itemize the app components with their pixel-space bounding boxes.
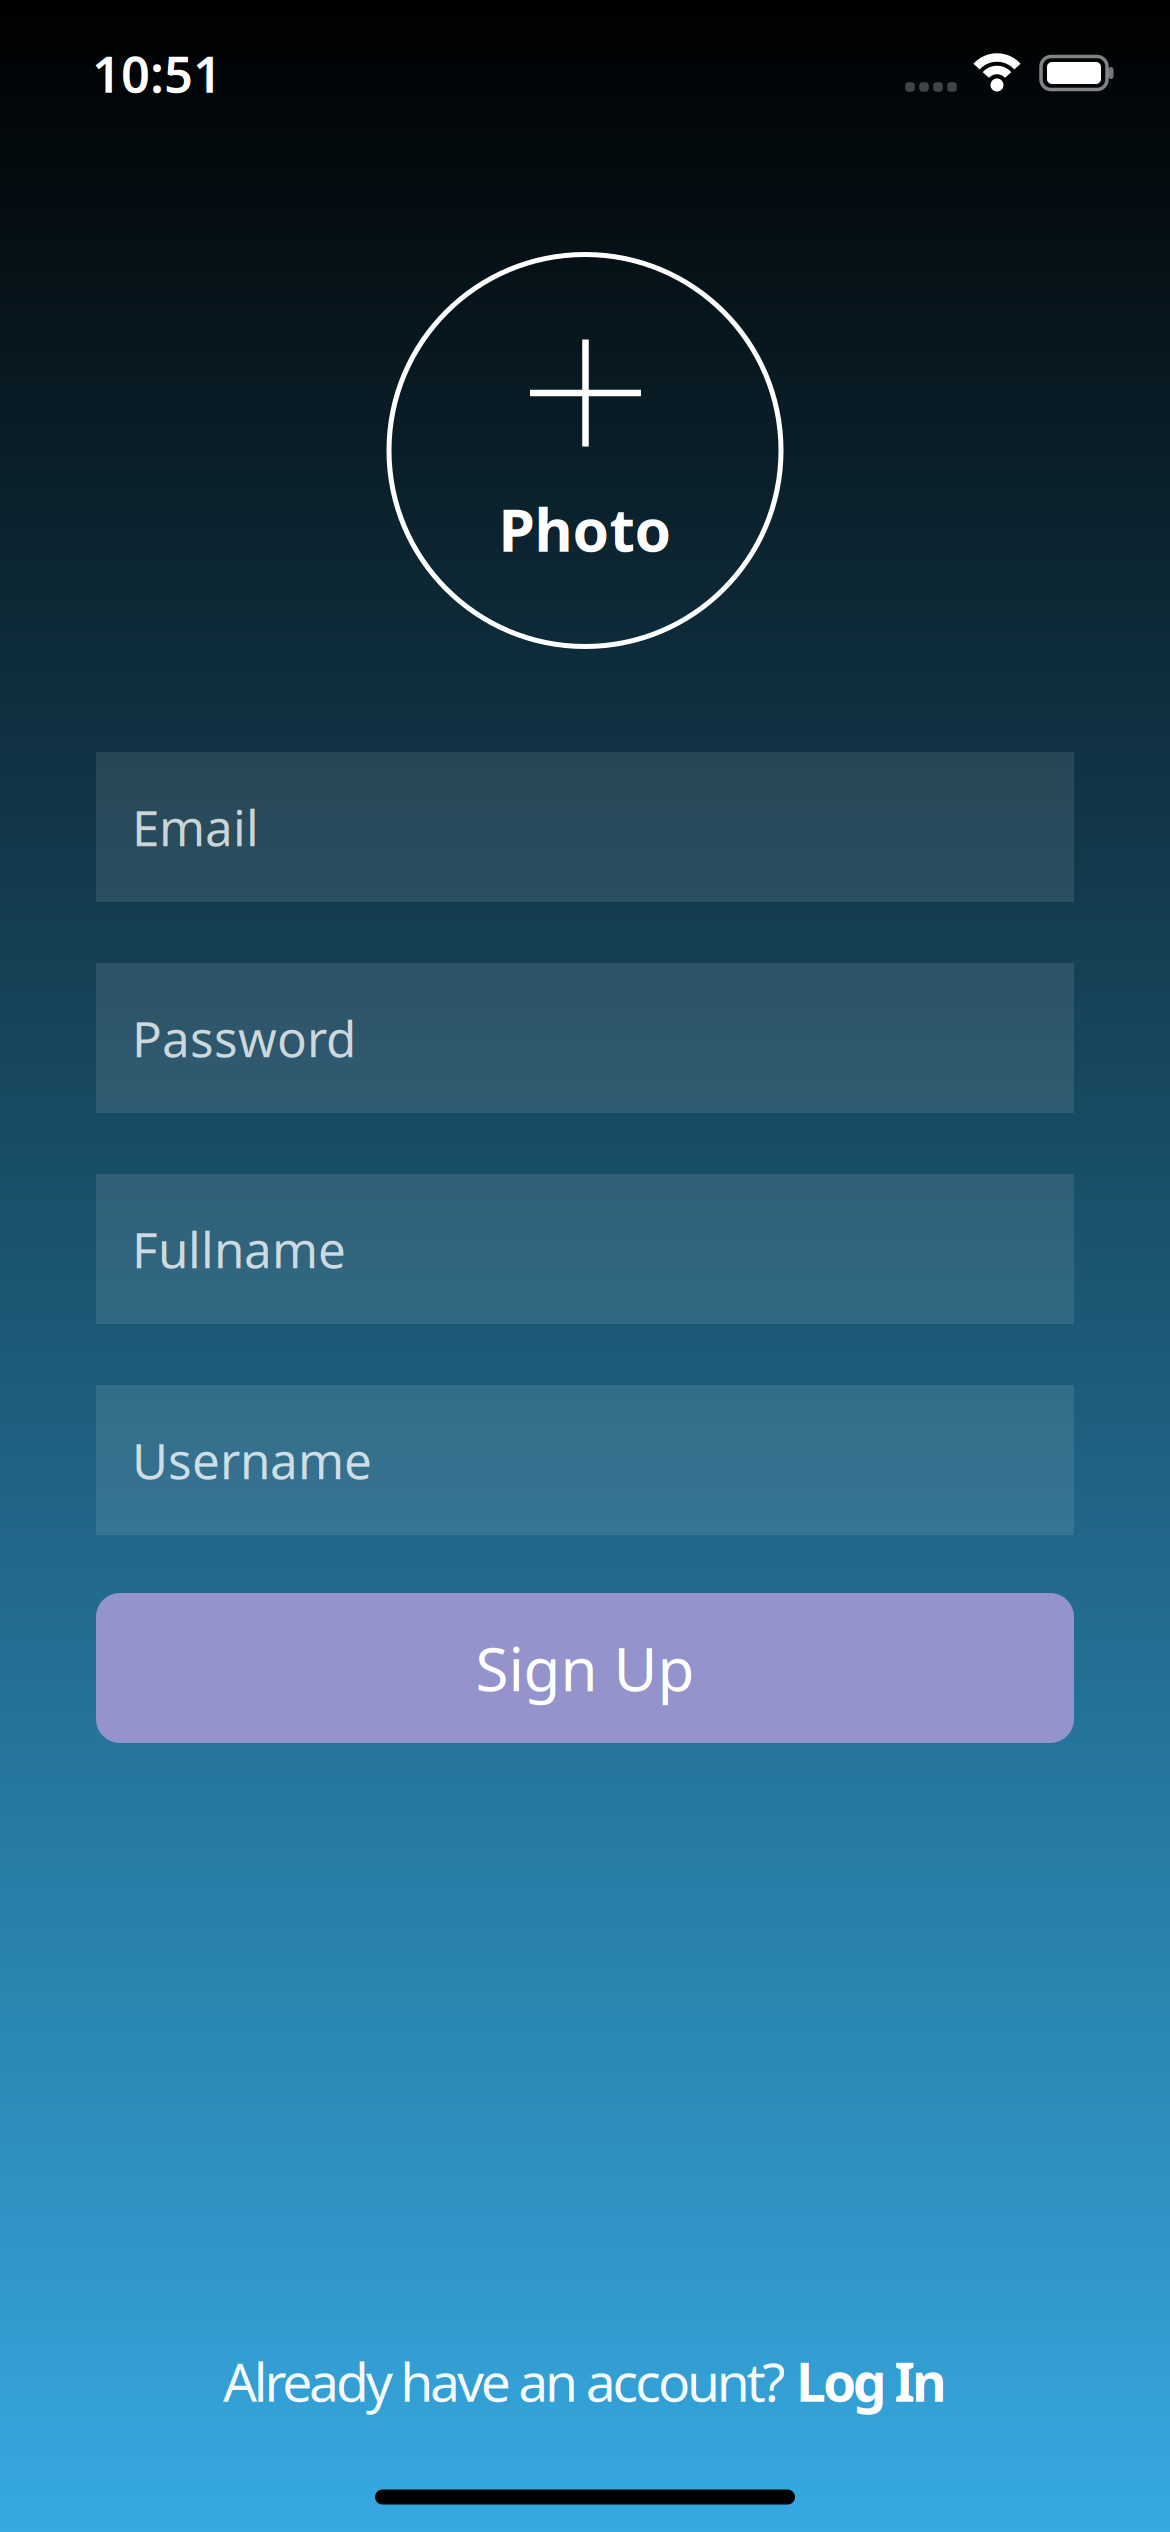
staticText: Log In [796,2346,947,2416]
button[interactable]: Fullname [96,1174,1074,1324]
staticText: Photo [498,490,671,568]
button[interactable]: Already have an account? [223,2346,947,2416]
staticText: Already have an account? [223,2346,796,2416]
button[interactable]: Username [96,1385,1074,1535]
button[interactable]: Password [96,963,1074,1113]
staticText: Sign Up [475,1628,694,1708]
staticText: 10:51 [92,39,222,107]
staticText: Password [132,1005,356,1071]
staticText: Fullname [132,1216,346,1282]
button[interactable]: Add Photo [389,254,781,646]
staticText: Email [132,794,259,860]
button[interactable]: Sign Up [96,1593,1074,1743]
staticText: Username [132,1427,372,1493]
button[interactable]: Email [96,752,1074,902]
